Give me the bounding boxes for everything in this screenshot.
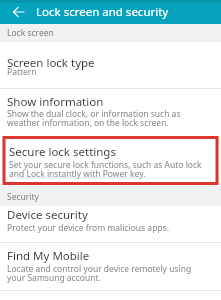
- staticText: Find My Mobile: [7, 248, 90, 264]
- staticText: Show the dual clock, or information such…: [7, 108, 181, 129]
- staticText: Device security: [7, 207, 88, 223]
- staticText: Pattern: [7, 66, 37, 78]
- staticText: Lock screen: [7, 27, 54, 39]
- staticText: Set your secure lock functions, such as …: [9, 159, 202, 180]
- staticText: Show information: [7, 94, 104, 110]
- staticText: Secure lock settings: [9, 144, 116, 160]
- button[interactable]: Secure lock settings: [0, 136, 221, 185]
- staticText: Screen lock type: [7, 55, 95, 71]
- staticText: Security: [7, 191, 39, 203]
- button[interactable]: Show information: [0, 89, 221, 136]
- button[interactable]: Find My Mobile: [0, 243, 221, 290]
- staticText: Locate and control your device remotely …: [7, 263, 192, 284]
- staticText: Protect your device from malicious apps.: [7, 222, 169, 234]
- button[interactable]: Device security: [0, 206, 221, 242]
- button[interactable]: Screen lock type: [0, 42, 221, 88]
- button[interactable]: Lock screen and security: [0, 0, 221, 24]
- staticText: Lock screen and security: [36, 4, 169, 20]
